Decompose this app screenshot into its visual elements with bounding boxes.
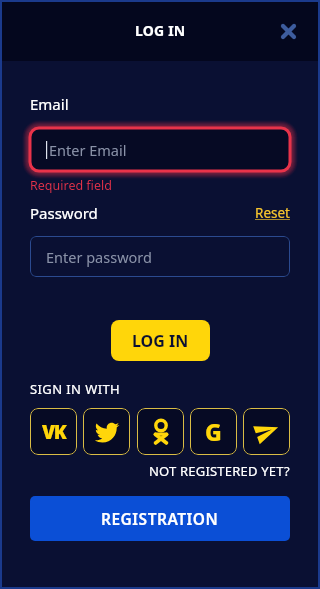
- staticText: VK: [42, 419, 66, 445]
- staticText: Reset: [255, 204, 290, 222]
- button[interactable]: [278, 21, 298, 41]
- button[interactable]: Enter password: [30, 236, 290, 277]
- staticText: G: [205, 416, 222, 447]
- button[interactable]: [243, 408, 290, 455]
- button[interactable]: Enter Email: [30, 128, 290, 171]
- staticText: LOG IN: [132, 330, 189, 352]
- staticText: Enter password: [46, 247, 152, 267]
- staticText: Password: [30, 203, 98, 223]
- button[interactable]: REGISTRATION: [30, 496, 290, 541]
- button[interactable]: VK: [30, 408, 77, 455]
- staticText: REGISTRATION: [101, 508, 219, 529]
- button[interactable]: G: [190, 408, 237, 455]
- staticText: Enter Email: [49, 140, 127, 160]
- staticText: Required field: [30, 177, 112, 194]
- staticText: SIGN IN WITH: [30, 380, 121, 398]
- button[interactable]: Reset: [255, 204, 290, 222]
- button[interactable]: [137, 408, 184, 455]
- button[interactable]: [83, 408, 130, 455]
- staticText: LOG IN: [135, 21, 186, 40]
- button[interactable]: LOG IN: [111, 320, 210, 361]
- staticText: NOT REGISTERED YET?: [149, 462, 290, 480]
- staticText: Email: [30, 94, 69, 114]
